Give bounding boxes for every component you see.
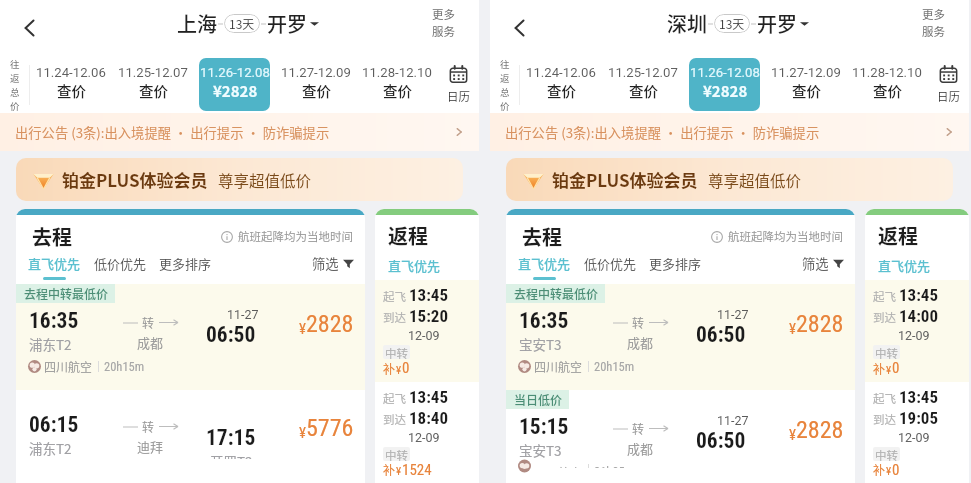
staticText: ¥ [299,424,306,442]
button[interactable]: 起飞 [375,382,479,483]
staticText: 到达 [873,309,896,326]
staticText: 18:40 [409,408,449,428]
staticText: 12-09 [408,430,440,445]
staticText: 补 [873,360,886,377]
staticText: 浦东T2 [29,334,72,352]
staticText: 成都 [137,333,164,352]
staticText: 21h35m [594,464,635,468]
button[interactable]: 起飞 [375,280,479,382]
staticText: 2828 [306,310,354,338]
button[interactable]: 上海 [177,9,319,38]
staticText: 16:35 [29,308,79,333]
staticText: 中转 [875,447,898,461]
button[interactable]: 11.26-12.08 [199,58,270,111]
button[interactable]: 低价优先 [94,254,147,273]
staticText: 0 [892,359,900,377]
staticText: 20h15m [104,359,145,374]
staticText: 补 [383,360,396,377]
button[interactable]: 返回 [502,10,538,46]
staticText: 0 [402,359,410,377]
staticText: 11.26-12.08 [200,65,270,80]
staticText: 中转 [385,447,408,461]
staticText: 5776 [306,414,354,442]
staticText: 返 [500,71,510,85]
button[interactable]: 筛选 [312,254,354,273]
staticText: 13天 [719,15,745,32]
button[interactable]: 当日低价 [506,390,855,483]
staticText: 当日低价 [514,391,563,408]
staticText: 19:05 [899,408,939,428]
button[interactable]: 11.28-12.10 [361,58,432,111]
staticText: 迪拜 [137,437,164,456]
button[interactable]: 筛选 [802,254,844,273]
button[interactable]: 11.27-12.09 [280,58,351,111]
button[interactable]: 06:15 [16,390,365,483]
staticText: 开罗T2 [210,451,253,459]
staticText: 13:45 [899,387,939,407]
button[interactable]: 低价优先 [584,254,637,273]
button[interactable]: 11.24-12.06 [525,58,597,111]
staticText: 中转 [875,345,898,359]
staticText: 四川航空 [44,358,93,375]
staticText: 补 [873,461,886,478]
staticText: 查价 [57,80,86,101]
button[interactable]: 直飞优先 [518,254,571,280]
staticText: 起飞 [383,288,406,305]
button[interactable]: 去程中转最低价 [16,284,365,390]
staticText: 11.26-12.08 [690,65,760,80]
button[interactable]: 起飞 [865,280,969,382]
button[interactable]: 11.26-12.08 [689,58,760,111]
button[interactable]: 11.24-12.06 [35,58,107,111]
staticText: ¥ [886,364,892,377]
button[interactable]: 起飞 [865,382,969,483]
staticText: 四川航空 [534,464,583,468]
staticText: 06:15 [29,412,79,437]
button[interactable]: 更多排序 [159,254,212,273]
staticText: 价 [10,99,20,113]
staticText: 铂金PLUS体验会员 [62,167,208,192]
button[interactable]: 11.25-12.07 [117,58,189,111]
staticText: ¥ [789,320,796,338]
staticText: 中转 [385,345,408,359]
button[interactable]: 去程中转最低价 [506,284,855,390]
staticText: 查价 [792,80,821,101]
staticText: 15:15 [519,414,569,439]
button[interactable]: 11.28-12.10 [851,58,922,111]
staticText: 上海 [177,9,217,38]
staticText: 返程 [388,221,428,250]
button[interactable]: 出行公告 (3条):出入境提醒 · 出行提示 · 防诈骗提示 [0,113,479,151]
staticText: 铂金PLUS体验会员 [552,167,698,192]
button[interactable]: 直飞优先 [28,254,81,280]
staticText: 直飞优先 [28,254,81,273]
button[interactable]: 日历 [437,65,479,105]
button[interactable]: 出行公告 (3条):出入境提醒 · 出行提示 · 防诈骗提示 [490,113,969,151]
staticText: 11-27 [227,307,259,322]
staticText: 11.24-12.06 [36,65,106,80]
staticText: 直飞优先 [878,256,931,275]
staticText: 成都 [627,333,654,352]
staticText: 12-09 [898,328,930,343]
button[interactable]: 11.25-12.07 [607,58,679,111]
button[interactable]: 更多 [432,6,455,40]
button[interactable]: 更多排序 [649,254,702,273]
button[interactable]: 铂金PLUS体验会员 [16,158,463,201]
button[interactable]: 11.27-12.09 [770,58,841,111]
staticText: 开罗 [757,9,797,38]
staticText: ¥ [886,465,892,478]
staticText: ¥ [396,364,402,377]
button[interactable]: 深圳 [667,9,809,38]
button[interactable]: 日历 [927,65,969,105]
staticText: 宝安T3 [519,334,562,352]
button[interactable]: 铂金PLUS体验会员 [506,158,953,201]
button[interactable]: 返回 [12,10,48,46]
staticText: 查价 [383,80,412,101]
staticText: 查价 [139,80,168,101]
staticText: 出行公告 (3条):出入境提醒 · 出行提示 · 防诈骗提示 [15,123,330,142]
staticText: 13:45 [409,387,449,407]
staticText: 返 [10,71,20,85]
button[interactable]: 更多 [922,6,945,40]
staticText: 起飞 [873,288,896,305]
staticText: 16:35 [519,308,569,333]
